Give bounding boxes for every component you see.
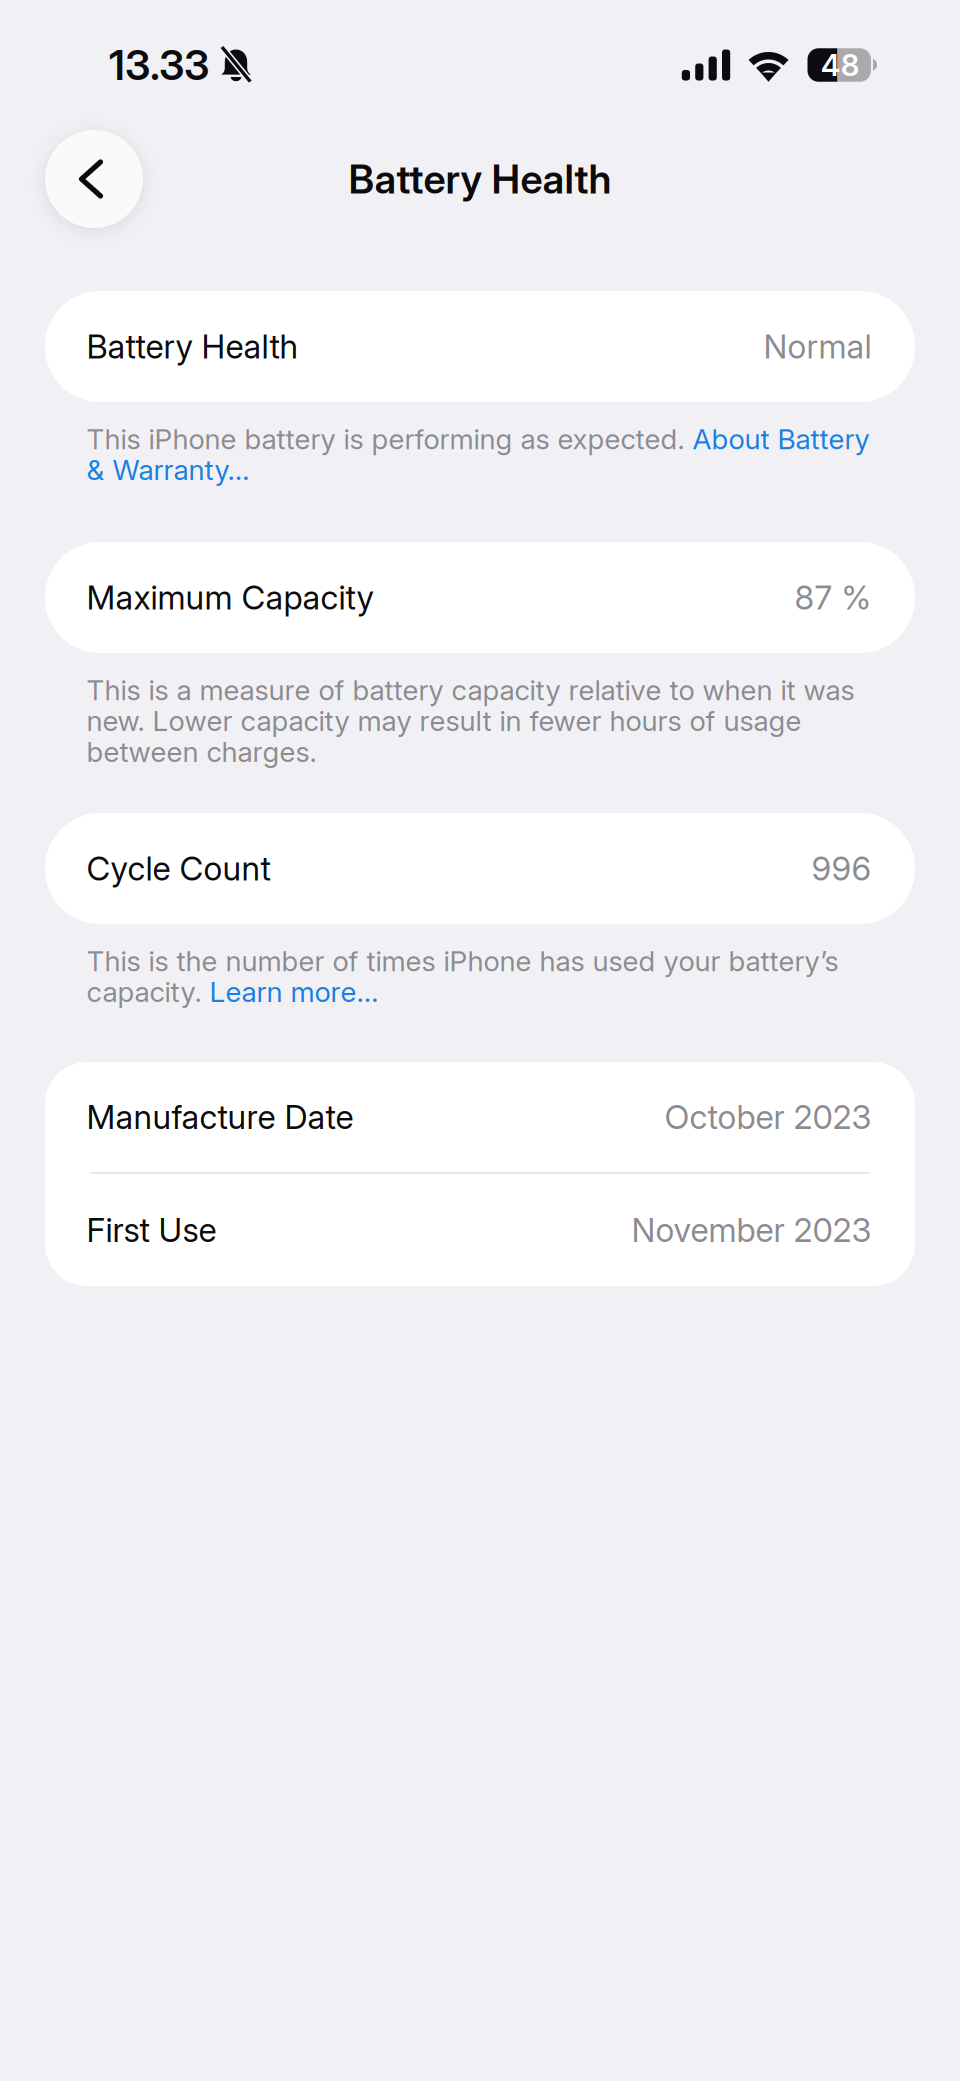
staticText: This is the number of times iPhone has u… (86, 944, 838, 1009)
button[interactable]: Manufacture Date (45, 1062, 915, 1172)
staticText: Manufacture Date (86, 1097, 353, 1137)
staticText: First Use (86, 1210, 216, 1250)
staticText: This iPhone battery is performing as exp… (86, 422, 869, 487)
staticText: 13.33 (109, 40, 209, 90)
staticText: 87 % (794, 578, 871, 617)
staticText: Maximum Capacity (86, 578, 373, 617)
staticText: October 2023 (664, 1097, 871, 1137)
staticText: Battery Health (348, 155, 611, 203)
button[interactable]: Maximum Capacity (0, 542, 960, 653)
button[interactable]: Back (45, 130, 143, 228)
staticText: Normal (763, 327, 871, 366)
staticText: This is a measure of battery capacity re… (86, 673, 854, 769)
staticText: Cycle Count (86, 849, 270, 888)
button[interactable]: Cycle Count (0, 813, 960, 924)
staticText: 48 (821, 47, 860, 83)
button[interactable]: First Use (45, 1174, 915, 1286)
staticText: 996 (811, 849, 871, 888)
button[interactable]: Battery Health (0, 291, 960, 402)
staticText: Battery Health (86, 327, 298, 366)
staticText: November 2023 (631, 1210, 871, 1250)
